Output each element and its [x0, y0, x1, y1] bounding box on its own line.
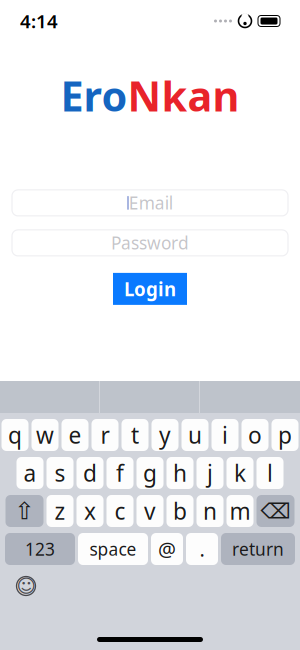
button[interactable]: f: [106, 457, 133, 489]
button[interactable]: z: [46, 495, 73, 527]
staticText: Password: [111, 231, 189, 254]
button[interactable]: s: [46, 457, 73, 489]
button[interactable]: space: [78, 533, 148, 565]
staticText: 123: [25, 537, 55, 560]
button[interactable]: g: [136, 457, 163, 489]
staticText: Email: [129, 191, 173, 214]
staticText: o: [248, 420, 262, 450]
button[interactable]: b: [166, 495, 193, 527]
button[interactable]: k: [226, 457, 253, 489]
staticText: 4:14: [20, 9, 58, 33]
button[interactable]: y: [151, 419, 178, 451]
staticText: Ero: [60, 68, 127, 123]
button[interactable]: @: [151, 533, 183, 565]
staticText: h: [173, 458, 187, 488]
button[interactable]: q: [1, 419, 28, 451]
staticText: ☺: [16, 575, 35, 597]
button[interactable]: Delete: [256, 495, 294, 527]
staticText: b: [173, 496, 187, 526]
staticText: .: [199, 536, 204, 562]
button[interactable]: return: [221, 533, 295, 565]
button[interactable]: x: [76, 495, 103, 527]
staticText: k: [234, 458, 246, 488]
staticText: y: [159, 420, 171, 450]
staticText: ⌫: [260, 499, 290, 523]
button[interactable]: u: [181, 419, 208, 451]
button[interactable]: c: [106, 495, 133, 527]
staticText: Login: [124, 276, 176, 301]
staticText: j: [207, 458, 213, 488]
button[interactable]: h: [166, 457, 193, 489]
staticText: n: [203, 496, 217, 526]
button[interactable]: m: [226, 495, 253, 527]
button[interactable]: n: [196, 495, 223, 527]
staticText: e: [68, 420, 81, 450]
staticText: a: [23, 458, 36, 488]
button[interactable]: j: [196, 457, 223, 489]
button[interactable]: v: [136, 495, 163, 527]
staticText: x: [84, 496, 96, 526]
staticText: l: [267, 458, 273, 488]
staticText: s: [54, 458, 65, 488]
button[interactable]: o: [241, 419, 268, 451]
button[interactable]: Emoji keyboard: [12, 572, 40, 600]
staticText: Nkan: [127, 68, 239, 123]
staticText: g: [143, 458, 157, 488]
staticText: z: [54, 496, 65, 526]
button[interactable]: t: [121, 419, 148, 451]
staticText: f: [116, 458, 124, 488]
button[interactable]: r: [91, 419, 118, 451]
staticText: space: [89, 537, 136, 560]
staticText: p: [278, 420, 292, 450]
staticText: q: [8, 420, 22, 450]
staticText: ⇧: [14, 497, 34, 525]
staticText: d: [83, 458, 97, 488]
button[interactable]: i: [211, 419, 238, 451]
button[interactable]: Shift: [5, 495, 43, 527]
staticText: m: [229, 496, 250, 526]
staticText: u: [188, 420, 202, 450]
button[interactable]: p: [271, 419, 298, 451]
staticText: c: [114, 496, 125, 526]
staticText: return: [232, 537, 284, 560]
staticText: @: [158, 536, 176, 562]
button[interactable]: l: [256, 457, 283, 489]
button[interactable]: 123: [5, 533, 75, 565]
button[interactable]: d: [76, 457, 103, 489]
staticText: r: [100, 420, 109, 450]
staticText: v: [144, 496, 156, 526]
button[interactable]: a: [16, 457, 43, 489]
button[interactable]: .: [186, 533, 218, 565]
button[interactable]: Login: [113, 273, 187, 305]
staticText: t: [131, 420, 139, 450]
button[interactable]: w: [31, 419, 58, 451]
staticText: w: [36, 420, 54, 450]
staticText: i: [222, 420, 228, 450]
button[interactable]: e: [61, 419, 88, 451]
